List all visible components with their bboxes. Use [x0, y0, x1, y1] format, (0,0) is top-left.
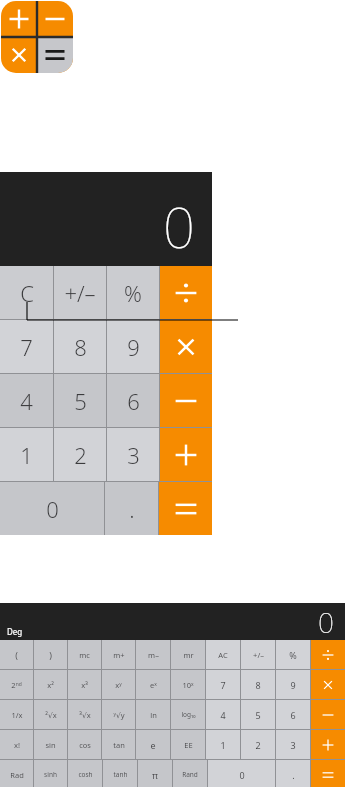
button[interactable]: ) — [34, 640, 67, 669]
staticText: xʸ — [115, 680, 122, 690]
button[interactable]: divide — [160, 266, 212, 319]
button[interactable]: tan — [102, 730, 135, 759]
staticText: π — [152, 769, 158, 781]
button[interactable]: x³ — [68, 670, 101, 699]
button[interactable]: 9 — [276, 670, 310, 699]
button[interactable]: 2ⁿᵈ — [0, 670, 33, 699]
button[interactable]: 1/x — [0, 700, 33, 729]
button[interactable]: Calculator app icon — [1, 1, 73, 73]
staticText: ²√x — [45, 710, 57, 720]
staticText: x! — [14, 740, 20, 750]
button[interactable]: 1 — [206, 730, 240, 759]
staticText: x² — [47, 680, 54, 690]
button[interactable]: 7 — [206, 670, 240, 699]
button[interactable]: cos — [68, 730, 101, 759]
staticText: 6 — [127, 386, 140, 416]
button[interactable]: 3 — [276, 730, 310, 759]
staticText: ( — [15, 649, 18, 661]
button[interactable]: log₁₀ — [171, 700, 205, 729]
button[interactable]: +/– — [241, 640, 275, 669]
button[interactable]: % — [276, 640, 310, 669]
button[interactable]: 9 — [107, 320, 159, 373]
staticText: sin — [45, 740, 56, 750]
staticText: 6 — [290, 709, 296, 721]
button[interactable]: m– — [136, 640, 170, 669]
staticText: tanh — [113, 770, 128, 779]
button[interactable]: sinh — [34, 760, 67, 787]
staticText: Rad — [10, 770, 24, 780]
button[interactable]: e — [136, 730, 170, 759]
button[interactable]: 6 — [107, 374, 159, 427]
button[interactable]: mc — [68, 640, 101, 669]
button[interactable]: xʸ — [102, 670, 135, 699]
button[interactable]: 8 — [241, 670, 275, 699]
button[interactable]: x! — [0, 730, 33, 759]
button[interactable]: 0 — [208, 760, 275, 787]
button[interactable]: x² — [34, 670, 67, 699]
staticText: 10ˣ — [182, 680, 194, 690]
staticText: 3 — [127, 440, 140, 470]
button[interactable]: equals — [311, 760, 345, 787]
staticText: 4 — [20, 386, 33, 416]
button[interactable]: ( — [0, 640, 33, 669]
staticText: 9 — [290, 679, 296, 691]
button[interactable]: m+ — [102, 640, 135, 669]
staticText: 1 — [20, 440, 33, 470]
button[interactable]: 2 — [54, 428, 106, 481]
staticText: ʸ√y — [113, 710, 125, 720]
staticText: 4 — [220, 709, 226, 721]
button[interactable]: 7 — [0, 320, 53, 373]
button[interactable]: ʸ√y — [102, 700, 135, 729]
button[interactable]: 5 — [241, 700, 275, 729]
button[interactable]: . — [105, 482, 158, 535]
button[interactable]: 3 — [107, 428, 159, 481]
button[interactable]: sin — [34, 730, 67, 759]
button[interactable]: subtract — [311, 700, 345, 729]
button[interactable]: 6 — [276, 700, 310, 729]
button[interactable]: 5 — [54, 374, 106, 427]
button[interactable]: Rand — [173, 760, 207, 787]
staticText: 2 — [255, 739, 261, 751]
button[interactable]: 4 — [0, 374, 53, 427]
button[interactable]: equals — [159, 482, 212, 535]
button[interactable]: tanh — [103, 760, 137, 787]
staticText: +/– — [253, 650, 264, 660]
button[interactable]: ln — [136, 700, 170, 729]
button[interactable]: ³√x — [68, 700, 101, 729]
button[interactable]: mr — [171, 640, 205, 669]
staticText: Rand — [182, 770, 198, 779]
button[interactable]: ²√x — [34, 700, 67, 729]
button[interactable]: 1 — [0, 428, 53, 481]
button[interactable]: eˣ — [136, 670, 170, 699]
button[interactable]: . — [276, 760, 310, 787]
button[interactable]: subtract — [160, 374, 212, 427]
button[interactable]: cosh — [68, 760, 102, 787]
button[interactable]: % — [107, 266, 159, 319]
button[interactable]: 0 — [0, 482, 104, 535]
button[interactable]: 8 — [54, 320, 106, 373]
button[interactable]: 2 — [241, 730, 275, 759]
staticText: ln — [150, 710, 157, 720]
button[interactable]: multiply — [311, 670, 345, 699]
button[interactable]: EE — [171, 730, 205, 759]
staticText: . — [129, 494, 135, 524]
button[interactable]: AC — [206, 640, 240, 669]
staticText: 2 — [74, 440, 87, 470]
staticText: m+ — [113, 650, 125, 660]
button[interactable]: multiply — [160, 320, 212, 373]
button[interactable]: divide — [311, 640, 345, 669]
staticText: 0 — [239, 769, 245, 781]
staticText: % — [124, 278, 142, 308]
staticText: 3 — [290, 739, 296, 751]
button[interactable]: 4 — [206, 700, 240, 729]
button[interactable]: add — [160, 428, 212, 481]
staticText: cosh — [78, 770, 93, 779]
button[interactable]: Rad — [0, 760, 33, 787]
staticText: +/– — [64, 278, 96, 308]
button[interactable]: add — [311, 730, 345, 759]
button[interactable]: 10ˣ — [171, 670, 205, 699]
button[interactable]: +/– — [54, 266, 106, 319]
button[interactable]: C — [0, 266, 53, 319]
staticText: log₁₀ — [181, 710, 196, 719]
button[interactable]: π — [138, 760, 172, 787]
